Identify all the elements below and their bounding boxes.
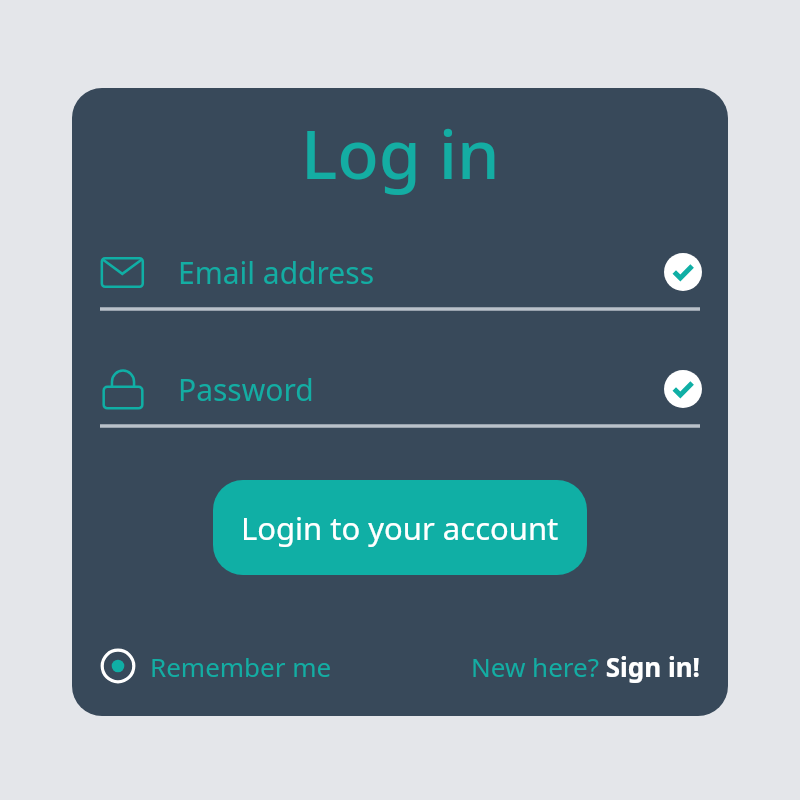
staticText: Log in	[301, 106, 500, 199]
other: Valid	[664, 370, 702, 408]
button[interactable]: Login to your account	[213, 480, 587, 575]
other: Email	[100, 249, 146, 295]
button[interactable]: Email	[72, 243, 728, 321]
staticText: New here? Sign in!	[471, 649, 700, 684]
staticText: Remember me	[150, 649, 332, 684]
button[interactable]: Password	[72, 360, 728, 438]
staticText: Email address	[178, 252, 375, 293]
other: Password	[100, 366, 146, 412]
button[interactable]: New here? Sign in!	[471, 645, 700, 688]
staticText: Login to your account	[241, 507, 559, 549]
other: Valid	[664, 253, 702, 291]
button[interactable]: Remember me	[100, 644, 332, 688]
staticText: Password	[178, 369, 314, 410]
